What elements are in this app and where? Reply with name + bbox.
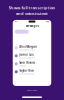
staticText: and voice-to-text (16, 11, 48, 16)
staticText: ▮▮▮ (46, 21, 49, 22)
staticText: On my way (19, 65, 26, 67)
button[interactable]: Taylor Kim (13, 68, 51, 76)
button[interactable]: Alex Morgan (13, 44, 51, 52)
staticText: Alex Morgan (19, 45, 37, 48)
staticText: Swipe to continue (26, 90, 37, 91)
staticText: Shows full transcription (8, 5, 55, 10)
staticText: Messages (25, 24, 38, 28)
staticText: Taylor Kim (19, 69, 34, 72)
staticText: Thanks for the update (19, 73, 34, 75)
staticText: Sam Rivera (19, 61, 35, 64)
button[interactable]: Jamie Lee (13, 52, 51, 60)
button[interactable]: Sam Rivera (13, 60, 51, 68)
staticText: Sounds good, talk soon (19, 57, 35, 59)
staticText: Voice note transcribed (19, 49, 35, 51)
staticText: Jamie Lee (19, 53, 34, 56)
staticText: 9:41 (15, 21, 18, 22)
